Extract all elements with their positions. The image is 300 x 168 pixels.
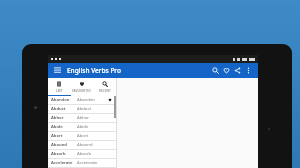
button[interactable]: More options xyxy=(243,65,254,76)
button[interactable]: RECENT xyxy=(93,78,116,95)
staticText: LIST xyxy=(56,89,63,93)
staticText: Absorb xyxy=(51,151,75,157)
staticText: Abound xyxy=(51,142,75,148)
button[interactable]: Search xyxy=(210,65,221,76)
button[interactable]: FAVOURITES xyxy=(70,78,93,95)
staticText: Abide xyxy=(77,124,116,130)
button[interactable]: LIST xyxy=(48,78,70,95)
staticText: Absorb xyxy=(77,151,116,157)
staticText: RECENT xyxy=(99,89,111,93)
staticText: Abandon xyxy=(51,97,75,103)
button[interactable]: Abort xyxy=(48,132,116,140)
staticText: English Verbs Pro xyxy=(67,66,121,75)
staticText: Abhor xyxy=(77,115,116,121)
staticText: Accelerate xyxy=(51,160,75,166)
button[interactable]: Abhor xyxy=(48,114,116,122)
button[interactable]: Open navigation menu xyxy=(52,65,63,76)
staticText: Abound xyxy=(77,142,116,148)
staticText: Abide xyxy=(51,124,75,130)
staticText: Accelerate xyxy=(77,160,116,166)
staticText: Abduct xyxy=(77,106,116,112)
button[interactable]: Abduct xyxy=(48,105,116,113)
staticText: Abduct xyxy=(51,106,75,112)
button[interactable]: Share xyxy=(232,65,243,76)
button[interactable]: Abide xyxy=(48,123,116,131)
staticText: Abort xyxy=(77,133,116,139)
staticText: Abort xyxy=(51,133,75,139)
button[interactable]: Abandon xyxy=(48,96,116,104)
button[interactable]: Favourites xyxy=(221,65,232,76)
staticText: Abhor xyxy=(51,115,75,121)
staticText: FAVOURITES xyxy=(72,89,91,93)
button[interactable]: Absorb xyxy=(48,150,116,158)
staticText: Abandon xyxy=(77,97,108,103)
button[interactable]: Abound xyxy=(48,141,116,149)
button[interactable]: Accelerate xyxy=(48,159,116,167)
